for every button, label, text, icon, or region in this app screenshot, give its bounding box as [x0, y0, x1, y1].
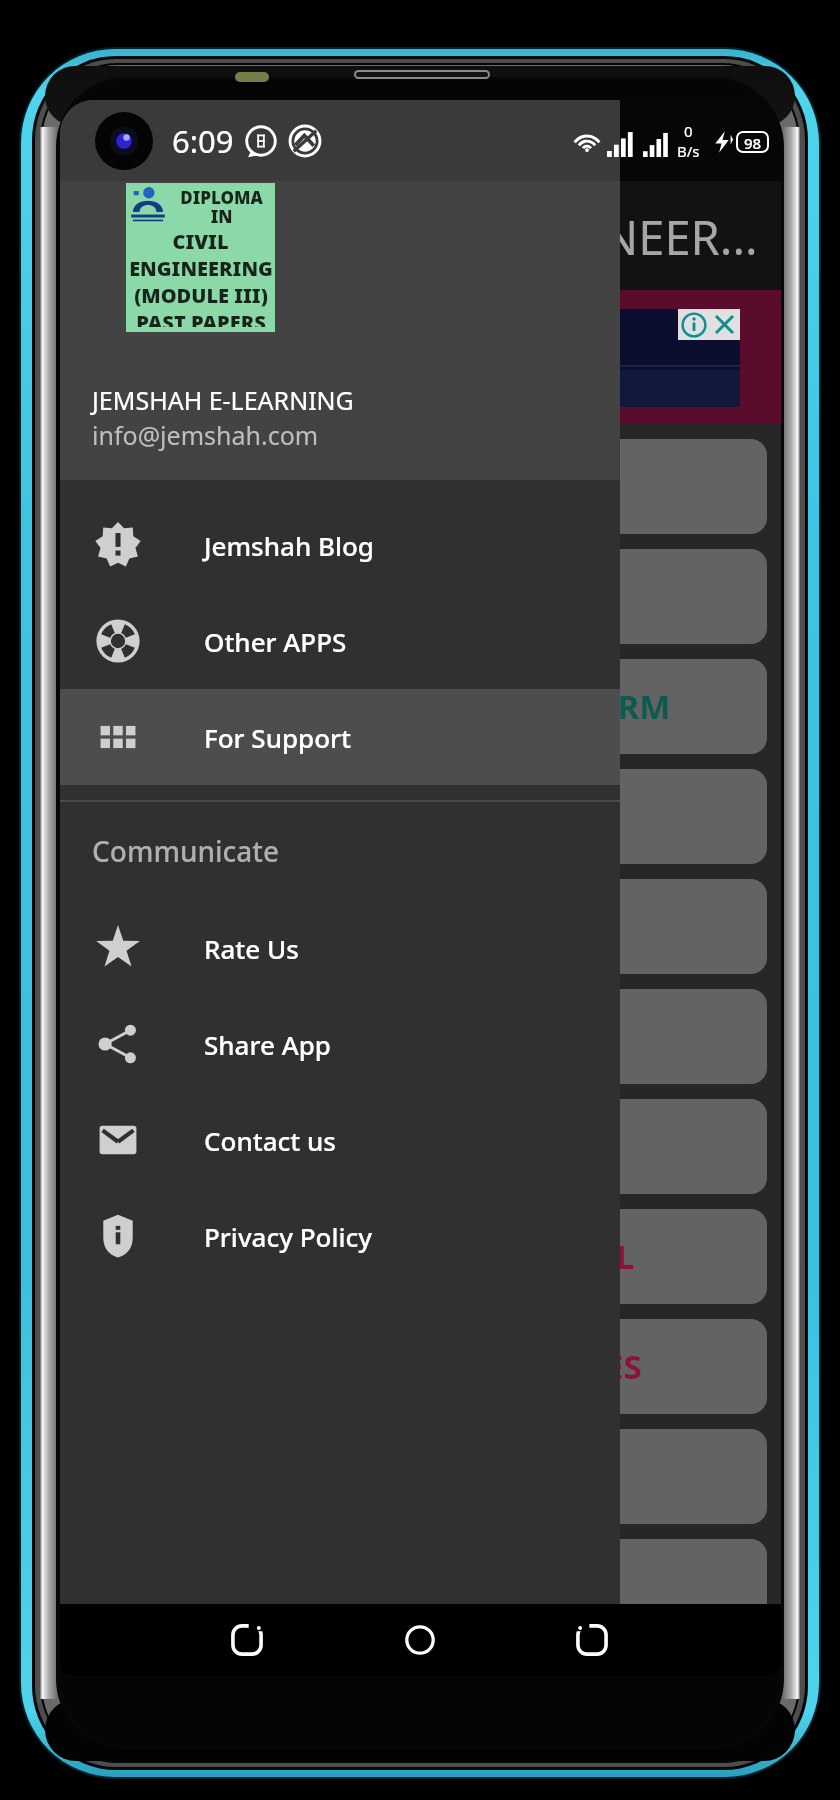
staticText: CIVIL ENGINEERING NOTES [199, 1344, 642, 1389]
staticText: Contact us [204, 1123, 336, 1158]
staticText: B/s [677, 141, 700, 161]
staticText: 0 [684, 121, 693, 141]
button[interactable] [74, 769, 767, 864]
staticText: CIVIL [172, 228, 229, 255]
button[interactable]: Other APPS [60, 593, 620, 689]
button[interactable]: For Support [60, 689, 620, 785]
staticText: info@jemshah.com [92, 418, 319, 452]
button[interactable] [74, 1429, 767, 1524]
staticText: 6:09 [172, 120, 234, 162]
button[interactable]: WATER SUPPLY AND LEVEL [74, 1209, 767, 1304]
button[interactable]: Advertisement [260, 309, 740, 407]
button[interactable] [74, 549, 767, 644]
button[interactable]: Home [377, 1604, 463, 1676]
button[interactable]: CIVIL ENGINEERING NOTES [74, 1319, 767, 1414]
staticText: ENGINEERING [129, 255, 273, 282]
staticText: JEMSHAH E-LEARNING [92, 383, 354, 417]
button[interactable]: Privacy Policy [60, 1188, 620, 1284]
staticText: Other APPS [204, 624, 347, 659]
button[interactable]: Back [549, 1604, 635, 1676]
button[interactable] [74, 1539, 767, 1634]
button[interactable]: Rate Us [60, 900, 620, 996]
button[interactable] [74, 879, 767, 974]
button[interactable] [74, 1099, 767, 1194]
staticText: Share App [204, 1027, 331, 1062]
staticText: 98 [744, 133, 762, 151]
button[interactable]: Contact us [60, 1092, 620, 1188]
button[interactable]: Jemshah Blog [60, 497, 620, 593]
button[interactable]: Share App [60, 996, 620, 1092]
staticText: WATER SUPPLY AND LEVEL [207, 1234, 635, 1279]
staticText: Rate Us [204, 931, 299, 966]
staticText: For Support [204, 720, 352, 755]
staticText: STRUCTURAL DESIGN OF FARM [171, 684, 671, 729]
staticText: DIPLOMA IN [169, 186, 274, 228]
staticText: Privacy Policy [204, 1219, 372, 1254]
staticText: (MODULE III) [134, 282, 268, 309]
staticText: CIVIL ENGINEER... [364, 205, 758, 269]
staticText: Jemshah Blog [204, 528, 374, 563]
button[interactable]: Recents [204, 1604, 290, 1676]
staticText: Communicate [92, 832, 280, 870]
button[interactable] [74, 989, 767, 1084]
staticText: PAST PAPERS [136, 309, 266, 327]
button[interactable] [74, 439, 767, 534]
button[interactable]: STRUCTURAL DESIGN OF FARM [74, 659, 767, 754]
